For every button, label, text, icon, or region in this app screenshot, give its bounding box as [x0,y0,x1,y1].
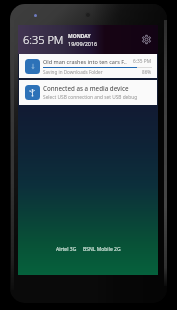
staticText: Select USB connection and set USB debug [43,94,138,101]
staticText: 6:35 PM [133,58,152,65]
staticText: Old man crashes into ten cars F.. [43,58,131,65]
staticText: 19/09/2016 [68,40,98,47]
staticText: Connected as a media device [43,84,129,92]
staticText: 86% [142,69,152,75]
button[interactable]: Old man crashes into ten cars F.. [19,54,157,78]
staticText: 6:35 PM [23,32,64,47]
staticText: Saving in Downloads Folder [43,69,103,75]
staticText: BSNL Mobile 2G [83,246,121,253]
staticText: Airtel 3G [56,246,77,253]
staticText: MONDAY [68,33,91,40]
button[interactable]: Connected as a media device [19,80,157,105]
button[interactable]: Settings [139,32,154,47]
